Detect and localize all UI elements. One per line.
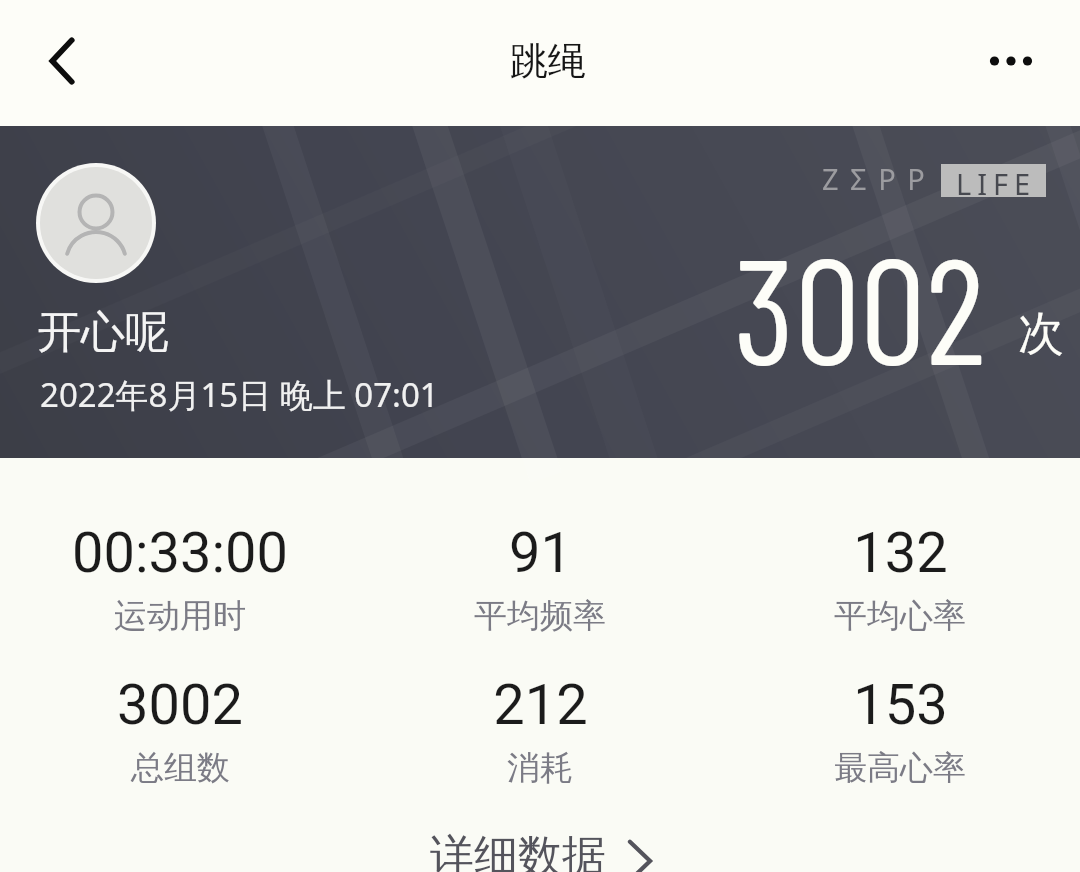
staticText: ZΣPP bbox=[822, 159, 937, 198]
staticText: 132 bbox=[853, 520, 948, 586]
staticText: 平均心率 bbox=[834, 595, 966, 637]
button[interactable]: 153 bbox=[720, 672, 1080, 789]
staticText: 3002 bbox=[117, 672, 243, 738]
button[interactable]: 详细数据 bbox=[1, 823, 1080, 872]
button[interactable]: More options bbox=[968, 18, 1054, 104]
staticText: 2022年8月15日 晚上 07:01 bbox=[40, 372, 439, 417]
button[interactable]: 91 bbox=[360, 520, 720, 637]
staticText: 00:33:00 bbox=[72, 520, 288, 586]
staticText: 次 bbox=[1018, 305, 1064, 363]
button[interactable]: 212 bbox=[360, 672, 720, 789]
button[interactable]: 3002 bbox=[0, 672, 360, 789]
staticText: 总组数 bbox=[131, 747, 230, 789]
staticText: 开心呢 bbox=[37, 305, 169, 360]
staticText: 3002 bbox=[734, 217, 986, 395]
staticText: 91 bbox=[509, 520, 572, 586]
staticText: 跳绳 bbox=[510, 37, 586, 85]
staticText: 最高心率 bbox=[834, 747, 966, 789]
staticText: 消耗 bbox=[507, 747, 573, 789]
button[interactable]: 132 bbox=[720, 520, 1080, 637]
button[interactable]: Back bbox=[20, 19, 104, 103]
staticText: 详细数据 bbox=[430, 829, 606, 872]
staticText: 平均频率 bbox=[474, 595, 606, 637]
staticText: 153 bbox=[853, 672, 948, 738]
staticText: LIFE bbox=[956, 164, 1037, 197]
staticText: 运动用时 bbox=[114, 595, 246, 637]
button[interactable]: 00:33:00 bbox=[0, 520, 360, 637]
staticText: 212 bbox=[493, 672, 588, 738]
